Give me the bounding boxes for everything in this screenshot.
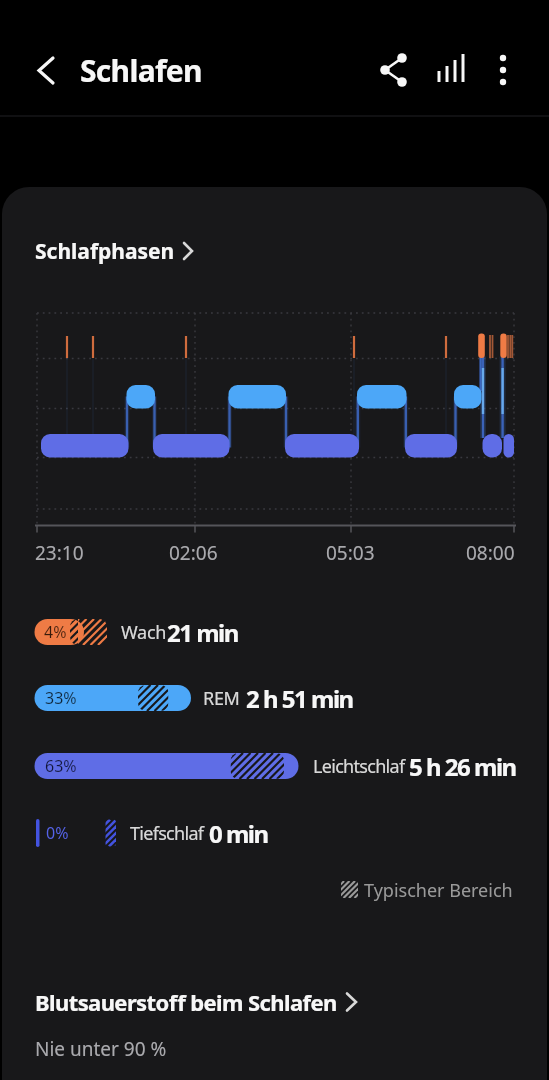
- staticText: Nie unter 90 %: [35, 1036, 167, 1062]
- staticText: 5 h 26 min: [409, 750, 516, 783]
- button[interactable]: [20, 975, 370, 1030]
- button[interactable]: [20, 226, 210, 276]
- staticText: Wach: [121, 620, 167, 645]
- staticText: Blutsauerstoff beim Schlafen: [35, 987, 337, 1017]
- button[interactable]: [481, 48, 526, 93]
- staticText: 02:06: [169, 540, 218, 566]
- staticText: 05:03: [326, 540, 375, 566]
- button[interactable]: [372, 48, 417, 93]
- staticText: Typischer Bereich: [364, 878, 513, 903]
- button[interactable]: [428, 48, 473, 93]
- staticText: Leichtschlaf: [313, 754, 405, 779]
- staticText: 08:00: [466, 540, 515, 566]
- staticText: Schlafen: [80, 50, 202, 91]
- staticText: 2 h 51 min: [246, 682, 353, 715]
- staticText: Tiefschlaf: [130, 821, 204, 846]
- staticText: 0 min: [209, 817, 268, 850]
- staticText: 4%: [44, 621, 67, 643]
- staticText: 0%: [46, 822, 69, 844]
- staticText: 23:10: [35, 540, 84, 566]
- button[interactable]: [25, 48, 70, 93]
- staticText: 63%: [45, 755, 77, 777]
- staticText: REM: [203, 686, 240, 711]
- staticText: 21 min: [167, 616, 238, 649]
- staticText: Schlafphasen: [35, 237, 175, 266]
- staticText: 33%: [45, 687, 77, 709]
